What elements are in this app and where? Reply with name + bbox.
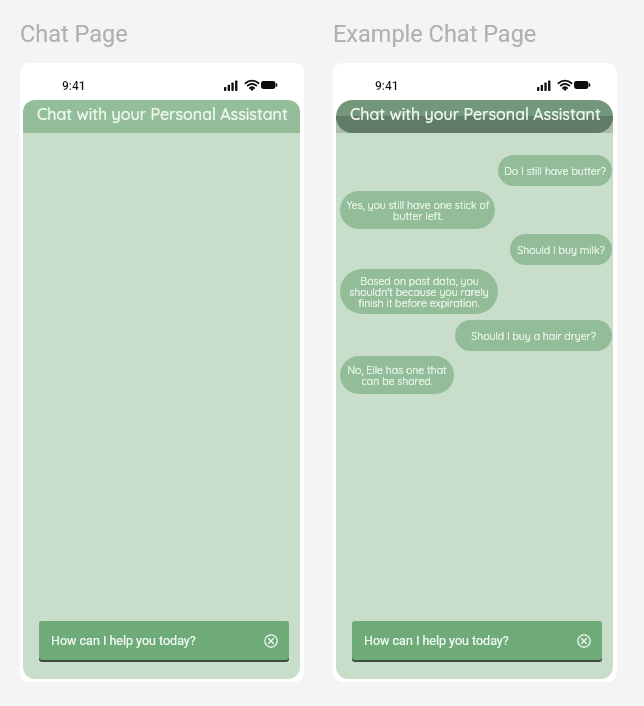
button[interactable]: Should I buy a hair dryer?: [455, 320, 612, 351]
staticText: How can I help you today?: [364, 633, 509, 648]
staticText: No, Elle has one that: [347, 363, 447, 376]
button[interactable]: Clear text: [575, 632, 593, 650]
button[interactable]: Yes, you still have one stick of: [340, 191, 495, 229]
button[interactable]: Chat with your Personal Assistant: [23, 100, 300, 133]
staticText: Yes, you still have one stick of: [346, 198, 490, 211]
button[interactable]: Chat with your Personal Assistant: [336, 100, 613, 133]
button[interactable]: How can I help you today?: [352, 621, 602, 660]
staticText: Should I buy a hair dryer?: [471, 329, 596, 342]
staticText: Chat with your Personal Assistant: [350, 104, 601, 124]
button[interactable]: How can I help you today?: [39, 621, 289, 660]
staticText: Chat with your Personal Assistant: [37, 104, 288, 124]
button[interactable]: Based on past data, you: [340, 269, 498, 314]
staticText: finish it before expiration.: [358, 296, 480, 309]
staticText: Example Chat Page: [333, 20, 537, 48]
staticText: butter left.: [393, 209, 443, 222]
staticText: can be shared.: [361, 374, 433, 387]
staticText: How can I help you today?: [51, 633, 196, 648]
button[interactable]: Do I still have butter?: [498, 155, 612, 186]
button[interactable]: Should I buy milk?: [510, 234, 612, 265]
staticText: 9:41: [375, 79, 399, 93]
button[interactable]: No, Elle has one that: [340, 356, 454, 394]
staticText: Chat Page: [20, 20, 128, 48]
staticText: Should I buy milk?: [517, 243, 605, 256]
button[interactable]: Clear text: [262, 632, 280, 650]
staticText: Do I still have butter?: [504, 164, 606, 177]
staticText: 9:41: [62, 79, 86, 93]
staticText: shouldn't because you rarely: [349, 285, 489, 298]
staticText: Based on past data, you: [360, 274, 479, 287]
